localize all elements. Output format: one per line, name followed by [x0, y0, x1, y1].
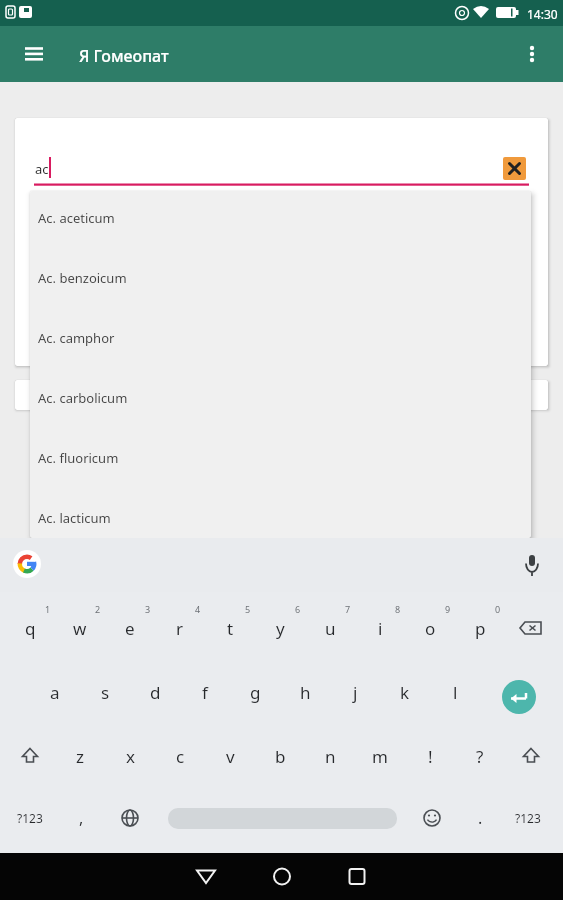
- staticText: o: [425, 617, 436, 640]
- button[interactable]: [182, 853, 230, 900]
- staticText: x: [126, 745, 135, 768]
- staticText: 9: [445, 603, 451, 615]
- button[interactable]: [509, 730, 553, 782]
- staticText: v: [226, 745, 235, 768]
- staticText: b: [275, 745, 286, 768]
- button[interactable]: [410, 792, 454, 844]
- staticText: 7: [345, 603, 351, 615]
- staticText: Ac. aceticum: [38, 209, 115, 227]
- button[interactable]: [8, 730, 52, 782]
- button[interactable]: [518, 38, 548, 70]
- button[interactable]: Ac. fluoricum: [30, 428, 531, 488]
- button[interactable]: [333, 853, 381, 900]
- button[interactable]: c: [158, 730, 202, 782]
- button[interactable]: [507, 602, 555, 654]
- staticText: t: [227, 617, 234, 640]
- button[interactable]: [503, 157, 526, 180]
- button[interactable]: [13, 550, 41, 578]
- button[interactable]: x: [108, 730, 152, 782]
- button[interactable]: [502, 680, 536, 714]
- staticText: Ac. fluoricum: [38, 449, 119, 467]
- button[interactable]: [108, 792, 152, 844]
- staticText: ?: [476, 745, 484, 768]
- button[interactable]: g: [233, 666, 277, 718]
- staticText: .: [478, 807, 483, 829]
- staticText: Ac. benzoicum: [38, 269, 127, 287]
- button[interactable]: Ac. carbolicum: [30, 368, 531, 428]
- staticText: 2: [95, 603, 101, 615]
- staticText: y: [276, 617, 285, 640]
- button[interactable]: ,: [66, 792, 96, 844]
- staticText: d: [150, 681, 161, 704]
- button[interactable]: l: [433, 666, 477, 718]
- button[interactable]: u: [308, 602, 352, 654]
- button[interactable]: m: [358, 730, 402, 782]
- staticText: u: [325, 617, 336, 640]
- staticText: Я Гомеопат: [79, 45, 169, 67]
- button[interactable]: r: [158, 602, 202, 654]
- button[interactable]: e: [108, 602, 152, 654]
- button[interactable]: [18, 38, 50, 70]
- staticText: p: [475, 617, 486, 640]
- button[interactable]: [258, 853, 306, 900]
- button[interactable]: !: [408, 730, 452, 782]
- button[interactable]: b: [258, 730, 302, 782]
- staticText: f: [202, 681, 208, 704]
- button[interactable]: q: [8, 602, 52, 654]
- button[interactable]: h: [283, 666, 327, 718]
- staticText: l: [453, 681, 458, 704]
- button[interactable]: w: [58, 602, 102, 654]
- button[interactable]: o: [408, 602, 452, 654]
- button[interactable]: a: [33, 666, 77, 718]
- staticText: r: [176, 617, 184, 640]
- button[interactable]: p: [458, 602, 502, 654]
- staticText: !: [428, 745, 433, 768]
- staticText: Ac. camphor: [38, 329, 115, 347]
- staticText: g: [250, 681, 261, 704]
- button[interactable]: y: [258, 602, 302, 654]
- staticText: s: [101, 681, 110, 704]
- button[interactable]: j: [333, 666, 377, 718]
- staticText: 4: [195, 603, 201, 615]
- button[interactable]: .: [468, 792, 492, 844]
- staticText: ?123: [515, 810, 541, 826]
- staticText: 5: [245, 603, 251, 615]
- staticText: a: [50, 681, 60, 704]
- button[interactable]: v: [208, 730, 252, 782]
- button[interactable]: f: [183, 666, 227, 718]
- button[interactable]: Ac. camphor: [30, 308, 531, 368]
- staticText: j: [353, 681, 358, 704]
- staticText: Ac. lacticum: [38, 509, 111, 527]
- staticText: 14:30: [527, 6, 558, 22]
- staticText: q: [25, 617, 36, 640]
- button[interactable]: [168, 808, 397, 829]
- button[interactable]: s: [83, 666, 127, 718]
- staticText: 6: [295, 603, 301, 615]
- button[interactable]: Ac. benzoicum: [30, 248, 531, 308]
- staticText: ,: [79, 807, 84, 829]
- staticText: 1: [45, 603, 51, 615]
- staticText: i: [378, 617, 383, 640]
- staticText: 0: [495, 603, 501, 615]
- button[interactable]: n: [308, 730, 352, 782]
- staticText: w: [73, 617, 87, 640]
- button[interactable]: ?123: [5, 792, 55, 844]
- staticText: n: [325, 745, 336, 768]
- staticText: c: [176, 745, 185, 768]
- staticText: ac: [35, 160, 49, 178]
- button[interactable]: t: [208, 602, 252, 654]
- button[interactable]: d: [133, 666, 177, 718]
- button[interactable]: z: [58, 730, 102, 782]
- button[interactable]: i: [358, 602, 402, 654]
- staticText: 8: [395, 603, 401, 615]
- staticText: 3: [145, 603, 151, 615]
- button[interactable]: ?123: [503, 792, 553, 844]
- button[interactable]: [518, 551, 546, 579]
- staticText: e: [125, 617, 135, 640]
- button[interactable]: ?: [458, 730, 502, 782]
- button[interactable]: Ac. aceticum: [30, 188, 531, 248]
- button[interactable]: Ac. lacticum: [30, 488, 531, 548]
- staticText: ?123: [17, 810, 43, 826]
- button[interactable]: k: [383, 666, 427, 718]
- staticText: Ac. carbolicum: [38, 389, 128, 407]
